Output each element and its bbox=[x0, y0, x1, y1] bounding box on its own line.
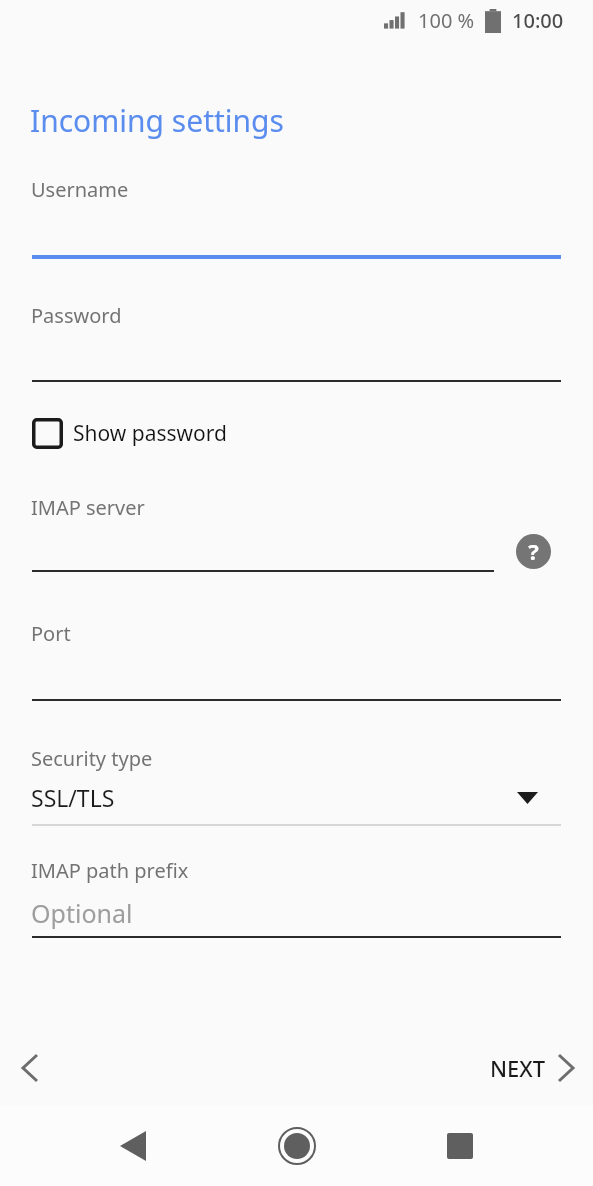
staticText: IMAP path prefix bbox=[31, 857, 189, 884]
staticText: IMAP server bbox=[31, 494, 145, 521]
button[interactable]: Optional bbox=[0, 894, 593, 938]
staticText: Password bbox=[31, 302, 122, 329]
staticText: Security type bbox=[31, 745, 153, 772]
button[interactable]: Home bbox=[265, 1114, 329, 1178]
staticText: Optional bbox=[31, 896, 133, 930]
button[interactable]: Recent apps bbox=[428, 1114, 492, 1178]
staticText: Show password bbox=[73, 419, 227, 448]
staticText: 10:00 bbox=[512, 7, 564, 34]
button[interactable]: Back bbox=[101, 1114, 165, 1178]
staticText: NEXT bbox=[490, 1053, 546, 1083]
staticText: Port bbox=[31, 620, 71, 647]
staticText: ? bbox=[528, 536, 539, 566]
button[interactable]: SSL/TLS bbox=[0, 778, 593, 826]
button[interactable]: Show password bbox=[32, 418, 227, 449]
button[interactable]: Back bbox=[2, 1040, 58, 1096]
button[interactable]: NEXT bbox=[490, 1040, 573, 1096]
staticText: Incoming settings bbox=[30, 100, 284, 141]
staticText: SSL/TLS bbox=[31, 782, 115, 813]
staticText: Username bbox=[31, 176, 129, 203]
staticText: 100 % bbox=[418, 7, 475, 34]
button[interactable]: Help bbox=[515, 533, 551, 569]
